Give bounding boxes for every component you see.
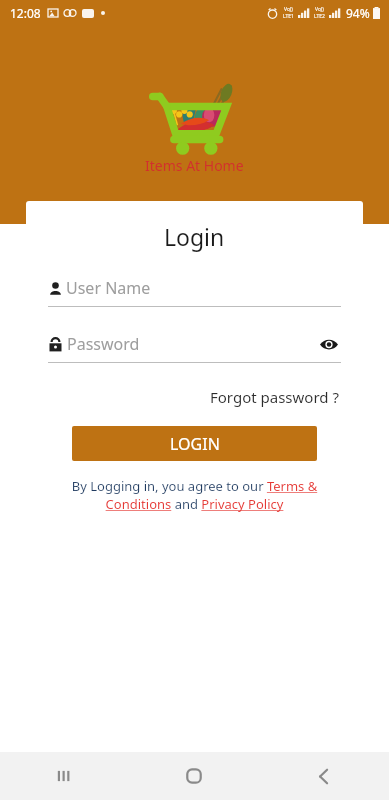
staticText: VoJ) xyxy=(315,6,324,13)
staticText: LTE2 xyxy=(314,13,325,20)
button[interactable]: Password xyxy=(48,332,341,363)
button[interactable]: Back xyxy=(259,752,389,800)
button[interactable]: Recent apps xyxy=(0,752,129,800)
staticText: Password xyxy=(67,333,140,355)
staticText: 94% xyxy=(346,5,370,21)
button[interactable]: Forgot password ? xyxy=(208,385,341,409)
staticText: 12:08 xyxy=(10,5,41,21)
staticText: LOGIN xyxy=(170,433,220,455)
staticText: LTE1 xyxy=(283,13,294,20)
staticText: Items At Home xyxy=(145,156,244,175)
staticText: Forgot password ? xyxy=(210,387,339,407)
button[interactable]: By Logging in, you agree to our Terms & … xyxy=(48,477,341,513)
staticText: Login xyxy=(164,221,225,252)
staticText: By Logging in, you agree to our Terms & … xyxy=(52,477,337,513)
button[interactable]: LOGIN xyxy=(72,426,317,461)
staticText: VoJ) xyxy=(284,6,293,13)
staticText: User Name xyxy=(66,277,151,299)
button[interactable]: Show password xyxy=(317,332,341,356)
button[interactable]: User Name xyxy=(48,277,341,307)
button[interactable]: Home xyxy=(129,752,259,800)
